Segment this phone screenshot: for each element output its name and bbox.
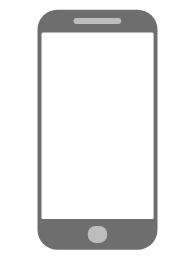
- button[interactable]: Smartphone preview: [38, 10, 158, 250]
- button[interactable]: Home button: [88, 226, 108, 243]
- button[interactable]: Device display: [42, 32, 154, 219]
